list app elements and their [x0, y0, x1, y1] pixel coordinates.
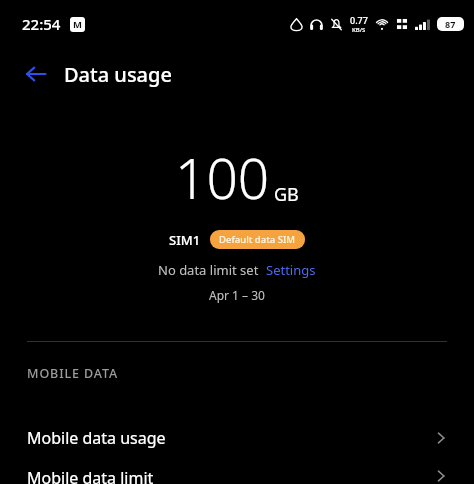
button[interactable]: Mobile data usage [0, 409, 474, 467]
staticText: KB/S [352, 26, 366, 34]
button[interactable]: Settings [266, 261, 316, 279]
staticText: No data limit set [158, 261, 259, 279]
staticText: MOBILE DATA [27, 365, 119, 382]
staticText: SIM1 [169, 231, 201, 249]
button[interactable]: Mobile data limit [0, 467, 474, 484]
staticText: M [73, 18, 82, 31]
staticText: Mobile data usage [27, 427, 166, 449]
staticText: GB [274, 182, 299, 207]
staticText: Mobile data limit [27, 467, 154, 484]
staticText: Settings [266, 261, 316, 279]
button[interactable]: Default data SIM [210, 230, 305, 249]
button[interactable]: Back [16, 54, 56, 94]
staticText: 22:54 [22, 14, 61, 34]
staticText: Default data SIM [219, 233, 296, 246]
staticText: 0.77 [350, 14, 368, 26]
staticText: Apr 1 – 30 [209, 287, 265, 303]
staticText: Data usage [64, 61, 172, 88]
staticText: 87 [445, 18, 456, 30]
staticText: 100 [175, 140, 270, 215]
